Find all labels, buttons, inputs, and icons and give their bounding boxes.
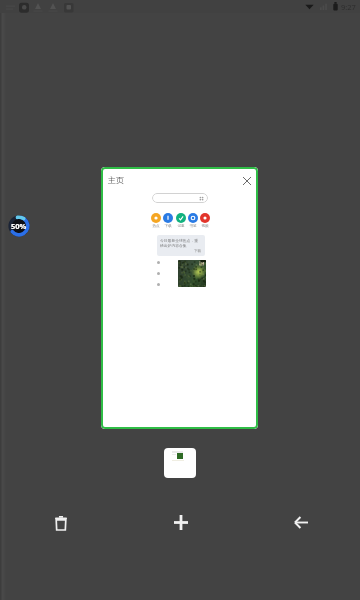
staticText: 热点: [152, 224, 160, 229]
staticText: 记事: [177, 224, 185, 229]
button[interactable]: 热点: [151, 213, 161, 229]
button[interactable]: Article image: [178, 260, 206, 287]
button[interactable]: New tab: [164, 505, 198, 539]
button[interactable]: 书签: [188, 213, 198, 229]
staticText: 书签: [189, 224, 197, 229]
staticText: 主页: [108, 175, 124, 185]
button[interactable]: 记事: [176, 213, 186, 229]
button[interactable]: 视频: [200, 213, 210, 229]
staticText: 视频: [201, 224, 209, 229]
button[interactable]: 今日最新全球热点，重 磅出炉内容合集: [157, 235, 205, 256]
staticText: 下载: [194, 249, 202, 254]
button[interactable]: Next tab: [164, 448, 196, 478]
button[interactable]: 下载: [163, 213, 173, 229]
button[interactable]: Close tab: [239, 173, 255, 189]
staticText: 下载: [164, 224, 172, 229]
button[interactable]: [152, 193, 208, 203]
staticText: 9:27: [341, 2, 356, 12]
staticText: 50%: [11, 221, 27, 231]
button[interactable]: Back: [284, 505, 318, 539]
button[interactable]: Battery 50 percent: [8, 215, 30, 237]
button[interactable]: 主页: [101, 167, 258, 429]
button[interactable]: Close all tabs: [44, 506, 78, 540]
staticText: 今日最新全球热点，重 磅出炉内容合集: [160, 238, 198, 248]
